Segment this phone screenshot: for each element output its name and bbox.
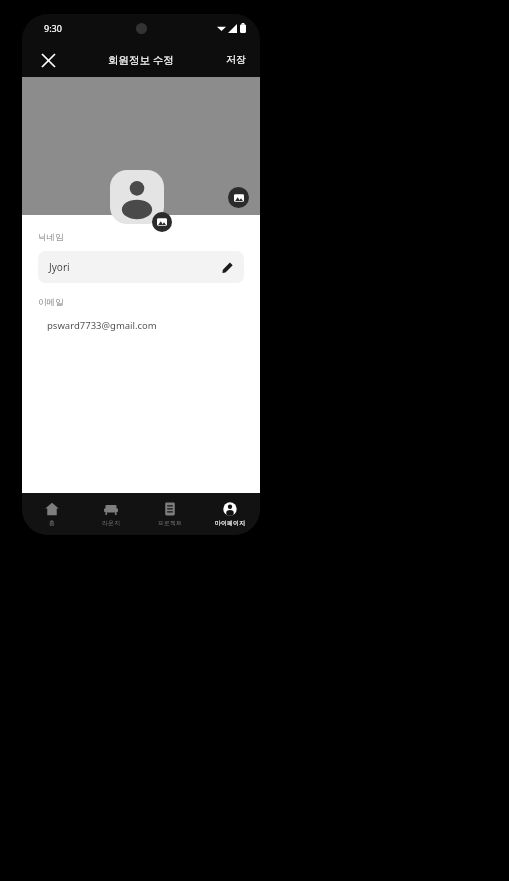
staticText: 이메일 — [38, 297, 64, 308]
button[interactable]: Change cover image — [228, 187, 249, 208]
button[interactable]: 라운지 — [81, 498, 140, 531]
button[interactable]: 홈 — [22, 498, 81, 531]
button[interactable]: Change profile image — [152, 212, 172, 232]
button[interactable]: 프로젝트 — [140, 498, 200, 531]
button[interactable]: Close — [34, 46, 62, 74]
staticText: 저장 — [226, 53, 246, 66]
button[interactable]: Jyori — [38, 251, 244, 283]
staticText: 마이페이지 — [215, 519, 245, 527]
staticText: Jyori — [49, 260, 222, 274]
staticText: 프로젝트 — [158, 519, 182, 527]
staticText: 회원정보 수정 — [108, 53, 174, 67]
button[interactable]: 마이페이지 — [200, 498, 260, 531]
staticText: 라운지 — [102, 519, 120, 527]
button[interactable]: Change profile image — [110, 170, 164, 224]
staticText: 홈 — [49, 519, 55, 527]
button[interactable]: 저장 — [212, 47, 260, 72]
button[interactable]: Change cover image — [22, 77, 260, 215]
staticText: 닉네임 — [38, 232, 64, 243]
staticText: 9:30 — [44, 22, 62, 34]
staticText: psward7733@gmail.com — [47, 319, 157, 332]
